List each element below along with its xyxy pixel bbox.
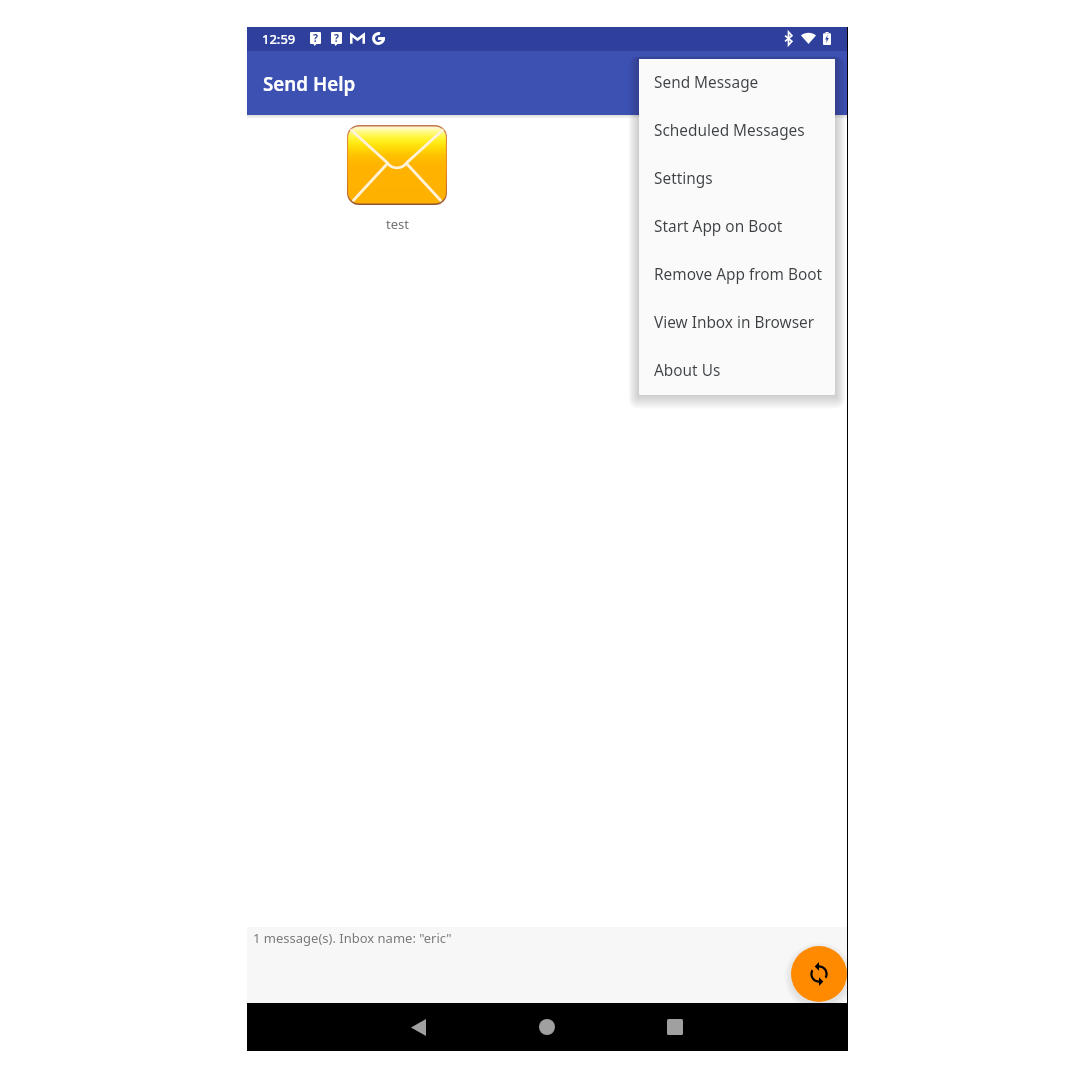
staticText: Send Message: [654, 72, 759, 93]
button[interactable]: View Inbox in Browser: [639, 299, 835, 347]
staticText: 12:59: [262, 30, 296, 48]
button[interactable]: Home: [531, 1011, 563, 1043]
staticText: Remove App from Boot: [654, 264, 823, 285]
staticText: test: [386, 215, 409, 233]
staticText: Send Help: [263, 71, 356, 97]
button[interactable]: Settings: [639, 155, 835, 203]
button[interactable]: Back: [402, 1011, 434, 1043]
staticText: Start App on Boot: [654, 216, 783, 237]
button[interactable]: Remove App from Boot: [639, 251, 835, 299]
button[interactable]: Send Message: [639, 59, 835, 107]
staticText: ?: [334, 31, 340, 45]
staticText: Settings: [654, 168, 713, 189]
button[interactable]: Refresh: [791, 946, 847, 1002]
button[interactable]: Recents: [659, 1011, 691, 1043]
button[interactable]: Start App on Boot: [639, 203, 835, 251]
staticText: About Us: [654, 360, 721, 381]
staticText: Scheduled Messages: [654, 120, 805, 141]
button[interactable]: Scheduled Messages: [639, 107, 835, 155]
staticText: View Inbox in Browser: [654, 312, 815, 333]
staticText: ?: [313, 31, 319, 45]
staticText: 1 message(s). Inbox name: "eric": [253, 929, 452, 947]
button[interactable]: About Us: [639, 347, 835, 395]
